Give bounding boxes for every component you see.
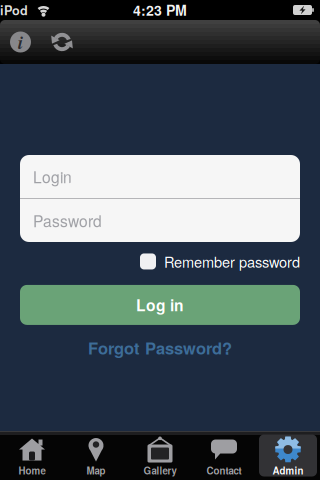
staticText: Admin bbox=[272, 463, 303, 477]
button[interactable]: Map bbox=[64, 431, 128, 480]
button[interactable]: Contact bbox=[192, 431, 256, 480]
staticText: Remember password bbox=[164, 251, 300, 272]
staticText: Contact bbox=[206, 463, 241, 477]
button[interactable]: Remember password bbox=[140, 251, 300, 272]
staticText: Map bbox=[86, 463, 105, 477]
staticText: Log in bbox=[136, 294, 184, 316]
staticText: Home bbox=[18, 463, 45, 477]
staticText: Login bbox=[33, 165, 72, 188]
staticText: i bbox=[18, 29, 23, 55]
button[interactable]: Forgot Password? bbox=[88, 336, 232, 360]
button[interactable]: Home bbox=[0, 431, 64, 480]
button[interactable]: Refresh bbox=[49, 30, 75, 54]
button[interactable]: Admin bbox=[256, 431, 320, 480]
button[interactable]: Login bbox=[20, 155, 300, 198]
staticText: Forgot Password? bbox=[88, 336, 232, 360]
staticText: Gallery bbox=[143, 463, 176, 477]
button[interactable]: Info bbox=[10, 29, 31, 55]
staticText: iPod bbox=[0, 1, 28, 19]
button[interactable]: Password bbox=[20, 199, 300, 242]
button[interactable]: Log in bbox=[20, 285, 300, 325]
staticText: 4:23 PM bbox=[133, 0, 187, 20]
staticText: Password bbox=[33, 209, 102, 232]
button[interactable]: Gallery bbox=[128, 431, 192, 480]
